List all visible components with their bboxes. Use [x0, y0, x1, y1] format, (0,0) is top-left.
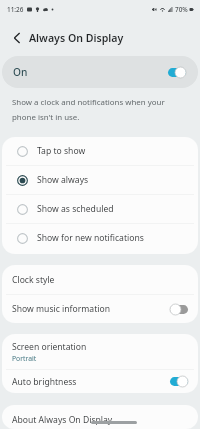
button[interactable]: Show music information	[2, 295, 198, 323]
staticText: Show for new notifications	[37, 232, 144, 244]
staticText: About Always On Display	[12, 414, 113, 426]
staticText: Screen orientation	[12, 341, 87, 353]
button[interactable]: Navigate up	[7, 28, 27, 48]
button[interactable]: About Always On Display	[2, 405, 198, 429]
staticText: Clock style	[12, 274, 55, 286]
staticText: Auto brightness	[12, 376, 77, 388]
staticText: phone isn't in use.	[12, 112, 80, 123]
staticText: Show a clock and notifications when your	[12, 97, 165, 108]
staticText: Show music information	[12, 303, 111, 315]
staticText: 11:26	[7, 5, 24, 14]
button[interactable]: Show always	[2, 166, 198, 194]
button[interactable]: On	[2, 56, 198, 88]
staticText: Always On Display	[29, 31, 124, 45]
staticText: 70%	[175, 5, 188, 14]
button[interactable]: Tap to show	[2, 137, 198, 165]
staticText: Tap to show	[37, 145, 86, 157]
button[interactable]: Show as scheduled	[2, 195, 198, 223]
button[interactable]: Auto brightness	[2, 370, 198, 393]
staticText: Portrait	[12, 354, 37, 363]
button[interactable]: Show for new notifications	[2, 224, 198, 252]
staticText: On	[13, 65, 28, 79]
button[interactable]: Screen orientation	[2, 334, 198, 369]
staticText: Show as scheduled	[37, 203, 114, 215]
button[interactable]: Clock style	[2, 265, 198, 294]
staticText: Show always	[37, 174, 89, 186]
